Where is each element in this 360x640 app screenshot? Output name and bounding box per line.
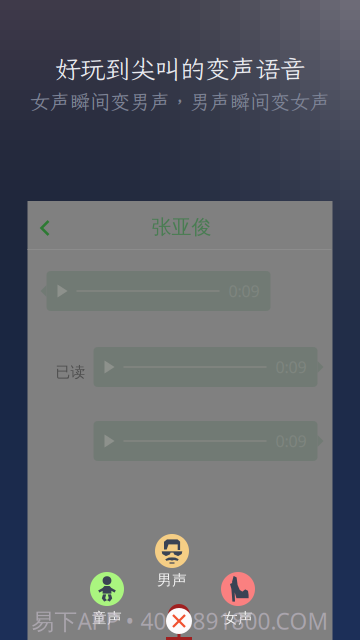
staticText: 0:09 xyxy=(275,430,306,452)
staticText: 童声 xyxy=(92,609,122,627)
staticText: 0:09 xyxy=(228,280,259,302)
button[interactable]: Back xyxy=(27,201,59,249)
staticText: 已读 xyxy=(55,363,85,381)
staticText: 女声瞬间变男声，男声瞬间变女声 xyxy=(30,88,330,115)
staticText: 好玩到尖叫的变声语音 xyxy=(55,52,305,85)
staticText: 张亚俊 xyxy=(151,215,211,239)
staticText: 易下APP • 4008891800.COM xyxy=(31,606,328,636)
button[interactable]: Cancel recording xyxy=(156,594,192,636)
button[interactable]: Play voice message xyxy=(93,347,323,387)
button[interactable]: 男声 xyxy=(144,534,200,589)
staticText: 男声 xyxy=(157,571,187,589)
button[interactable]: 童声 xyxy=(79,572,135,627)
button[interactable]: Play voice message xyxy=(40,271,270,311)
button[interactable]: 女声 xyxy=(210,572,266,627)
staticText: 0:09 xyxy=(275,356,306,378)
button[interactable]: Play voice message xyxy=(93,421,323,461)
staticText: 女声 xyxy=(223,609,253,627)
